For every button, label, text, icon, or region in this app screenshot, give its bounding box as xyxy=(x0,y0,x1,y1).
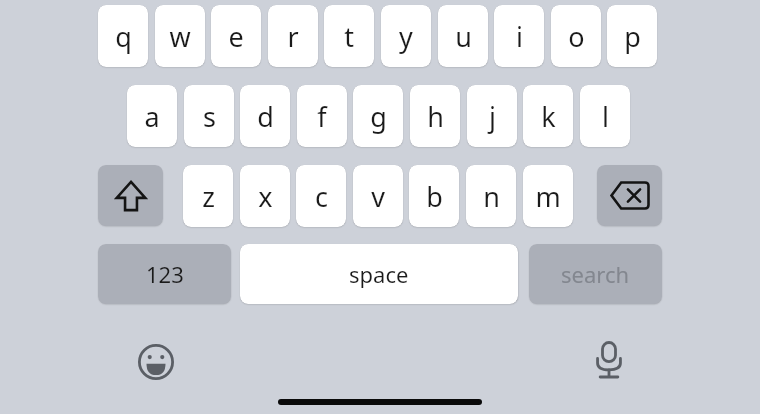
staticText: v xyxy=(371,178,385,215)
button[interactable]: l xyxy=(580,85,630,147)
button[interactable]: z xyxy=(183,165,233,227)
button[interactable]: p xyxy=(607,5,657,67)
button[interactable]: Voice input xyxy=(583,334,635,386)
button[interactable]: r xyxy=(268,5,318,67)
staticText: t xyxy=(344,18,354,55)
button[interactable]: Emoji keyboard xyxy=(130,336,182,388)
button[interactable]: w xyxy=(155,5,205,67)
staticText: i xyxy=(516,18,523,55)
staticText: y xyxy=(399,18,413,55)
staticText: x xyxy=(258,178,273,215)
staticText: 123 xyxy=(146,259,184,289)
button[interactable]: search xyxy=(529,244,662,304)
staticText: f xyxy=(317,98,327,135)
staticText: p xyxy=(624,18,641,55)
button[interactable]: h xyxy=(410,85,460,147)
button[interactable]: space xyxy=(240,244,518,304)
staticText: m xyxy=(535,178,561,215)
staticText: z xyxy=(202,178,215,215)
button[interactable]: n xyxy=(466,165,516,227)
button[interactable]: s xyxy=(184,85,234,147)
button[interactable]: b xyxy=(409,165,459,227)
button[interactable]: g xyxy=(353,85,403,147)
staticText: k xyxy=(541,98,556,135)
button[interactable]: k xyxy=(523,85,573,147)
button[interactable]: o xyxy=(551,5,601,67)
staticText: e xyxy=(228,18,244,55)
staticText: q xyxy=(115,18,132,55)
button[interactable]: v xyxy=(353,165,403,227)
button[interactable]: q xyxy=(98,5,148,67)
staticText: d xyxy=(257,98,274,135)
button[interactable]: Shift xyxy=(98,165,163,226)
button[interactable]: j xyxy=(467,85,517,147)
button[interactable]: c xyxy=(296,165,346,227)
button[interactable]: i xyxy=(494,5,544,67)
staticText: w xyxy=(169,18,191,55)
staticText: j xyxy=(489,98,496,135)
button[interactable]: y xyxy=(381,5,431,67)
button[interactable]: x xyxy=(240,165,290,227)
staticText: u xyxy=(455,18,472,55)
button[interactable]: u xyxy=(438,5,488,67)
staticText: c xyxy=(315,178,328,215)
button[interactable]: 123 xyxy=(98,244,231,304)
button[interactable]: Backspace xyxy=(597,165,662,226)
staticText: search xyxy=(561,259,630,289)
staticText: o xyxy=(568,18,585,55)
staticText: s xyxy=(203,98,216,135)
staticText: r xyxy=(287,18,299,55)
button[interactable]: f xyxy=(297,85,347,147)
button[interactable]: a xyxy=(127,85,177,147)
staticText: h xyxy=(427,98,444,135)
staticText: b xyxy=(426,178,443,215)
button[interactable]: m xyxy=(523,165,573,227)
button[interactable]: t xyxy=(324,5,374,67)
staticText: space xyxy=(349,259,409,289)
staticText: l xyxy=(602,98,609,135)
button[interactable]: e xyxy=(211,5,261,67)
button[interactable]: d xyxy=(240,85,290,147)
staticText: n xyxy=(483,178,500,215)
staticText: g xyxy=(370,98,387,135)
staticText: a xyxy=(144,98,160,135)
